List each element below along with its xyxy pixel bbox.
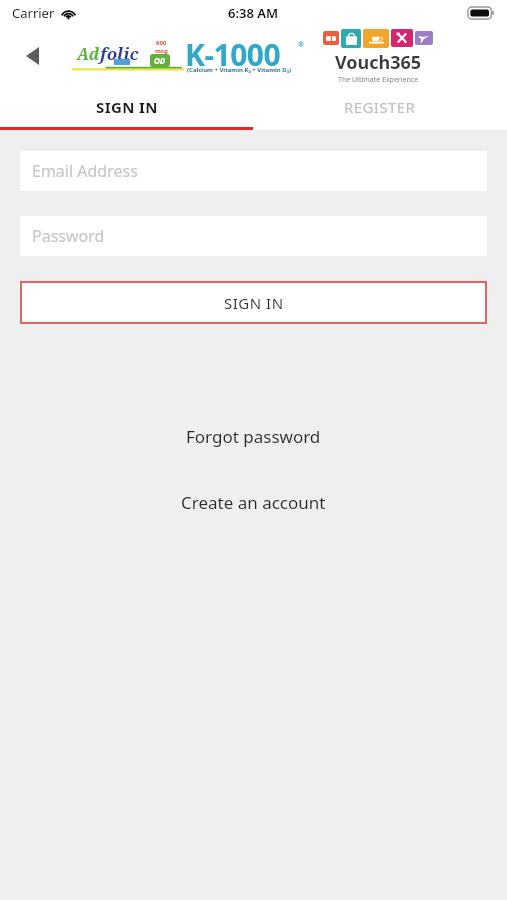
staticText: The Ultimate Experience (338, 75, 419, 85)
button[interactable]: Create an account (165, 487, 342, 518)
staticText: Forgot password (186, 425, 321, 448)
staticText: Create an account (181, 491, 326, 514)
staticText: 6:38 AM (228, 4, 279, 22)
staticText: REGISTER (344, 97, 416, 117)
staticText: Password (32, 225, 105, 247)
staticText: SIGN IN (96, 97, 158, 117)
staticText: (Calcium + Vitamin K₂ + Vitamin D₃) (187, 66, 291, 74)
button[interactable]: SIGN IN (0, 86, 253, 127)
button[interactable]: SIGN IN (20, 281, 487, 324)
button[interactable]: Forgot password (170, 421, 337, 452)
staticText: OD (154, 55, 166, 66)
button[interactable]: Back (14, 38, 50, 74)
staticText: folic (100, 42, 139, 65)
staticText: Carrier (12, 4, 55, 22)
button[interactable]: Email Address (20, 151, 487, 191)
staticText: mcg (155, 47, 168, 55)
staticText: Ad (77, 43, 100, 65)
staticText: Vouch365 (335, 50, 422, 75)
button[interactable]: Password (20, 216, 487, 256)
staticText: SIGN IN (224, 293, 284, 313)
staticText: Email Address (32, 160, 138, 182)
staticText: 600 (156, 39, 167, 47)
button[interactable]: REGISTER (253, 86, 507, 127)
staticText: K-1000 (185, 34, 281, 75)
staticText: ® (298, 40, 304, 50)
